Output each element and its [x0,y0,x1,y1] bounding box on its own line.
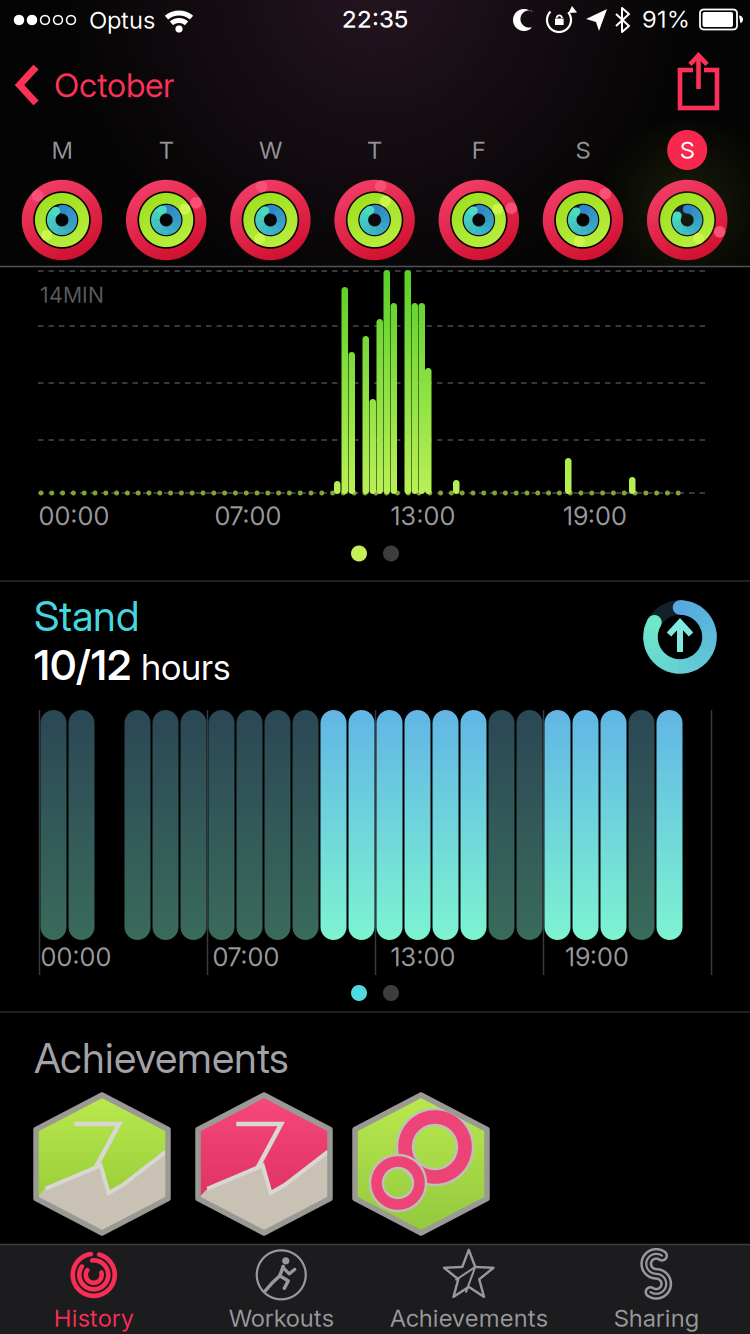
staticText: 22:35 [342,5,408,33]
staticText: hours [141,646,231,688]
staticText: Stand [34,592,139,640]
staticText: T [367,136,382,164]
staticText: 19:00 [565,942,629,972]
staticText: 00:00 [40,942,111,972]
staticText: 91% [642,5,690,33]
button[interactable]: Achievement badge [32,1091,172,1237]
button[interactable]: Achievements [376,1246,562,1334]
staticText: 19:00 [563,501,627,531]
button[interactable]: Day T [123,130,209,262]
button[interactable]: History [1,1246,187,1334]
button[interactable]: Share [677,52,721,110]
staticText: 07:00 [212,942,279,972]
staticText: 00:00 [38,501,109,531]
staticText: 14MIN [40,282,104,308]
staticText: T [159,136,174,164]
staticText: Achievements [390,1304,548,1332]
staticText: 10/12 [34,641,131,689]
staticText: October [54,65,174,105]
button[interactable]: Sharing [563,1246,749,1334]
button[interactable]: Day S [644,130,730,262]
button[interactable]: October [16,63,236,106]
button[interactable]: Day T [332,130,418,262]
staticText: 13:00 [390,501,455,531]
staticText: 13:00 [390,942,455,972]
staticText: Optus [89,6,155,34]
staticText: W [259,136,282,164]
button[interactable]: Achievement badge [194,1091,334,1237]
button[interactable]: Day M [19,130,105,262]
staticText: History [54,1304,134,1332]
staticText: Sharing [614,1304,699,1332]
button[interactable]: Day S [540,130,626,262]
button[interactable]: Workouts [188,1246,374,1334]
button[interactable]: Day F [436,130,522,262]
button[interactable]: Achievement badge [351,1091,491,1237]
button[interactable]: Day W [227,130,313,262]
staticText: Workouts [229,1304,334,1332]
staticText: F [472,136,486,164]
staticText: S [680,136,695,164]
staticText: 07:00 [214,501,281,531]
staticText: Achievements [34,1034,289,1082]
staticText: S [575,136,590,164]
staticText: M [51,136,72,164]
